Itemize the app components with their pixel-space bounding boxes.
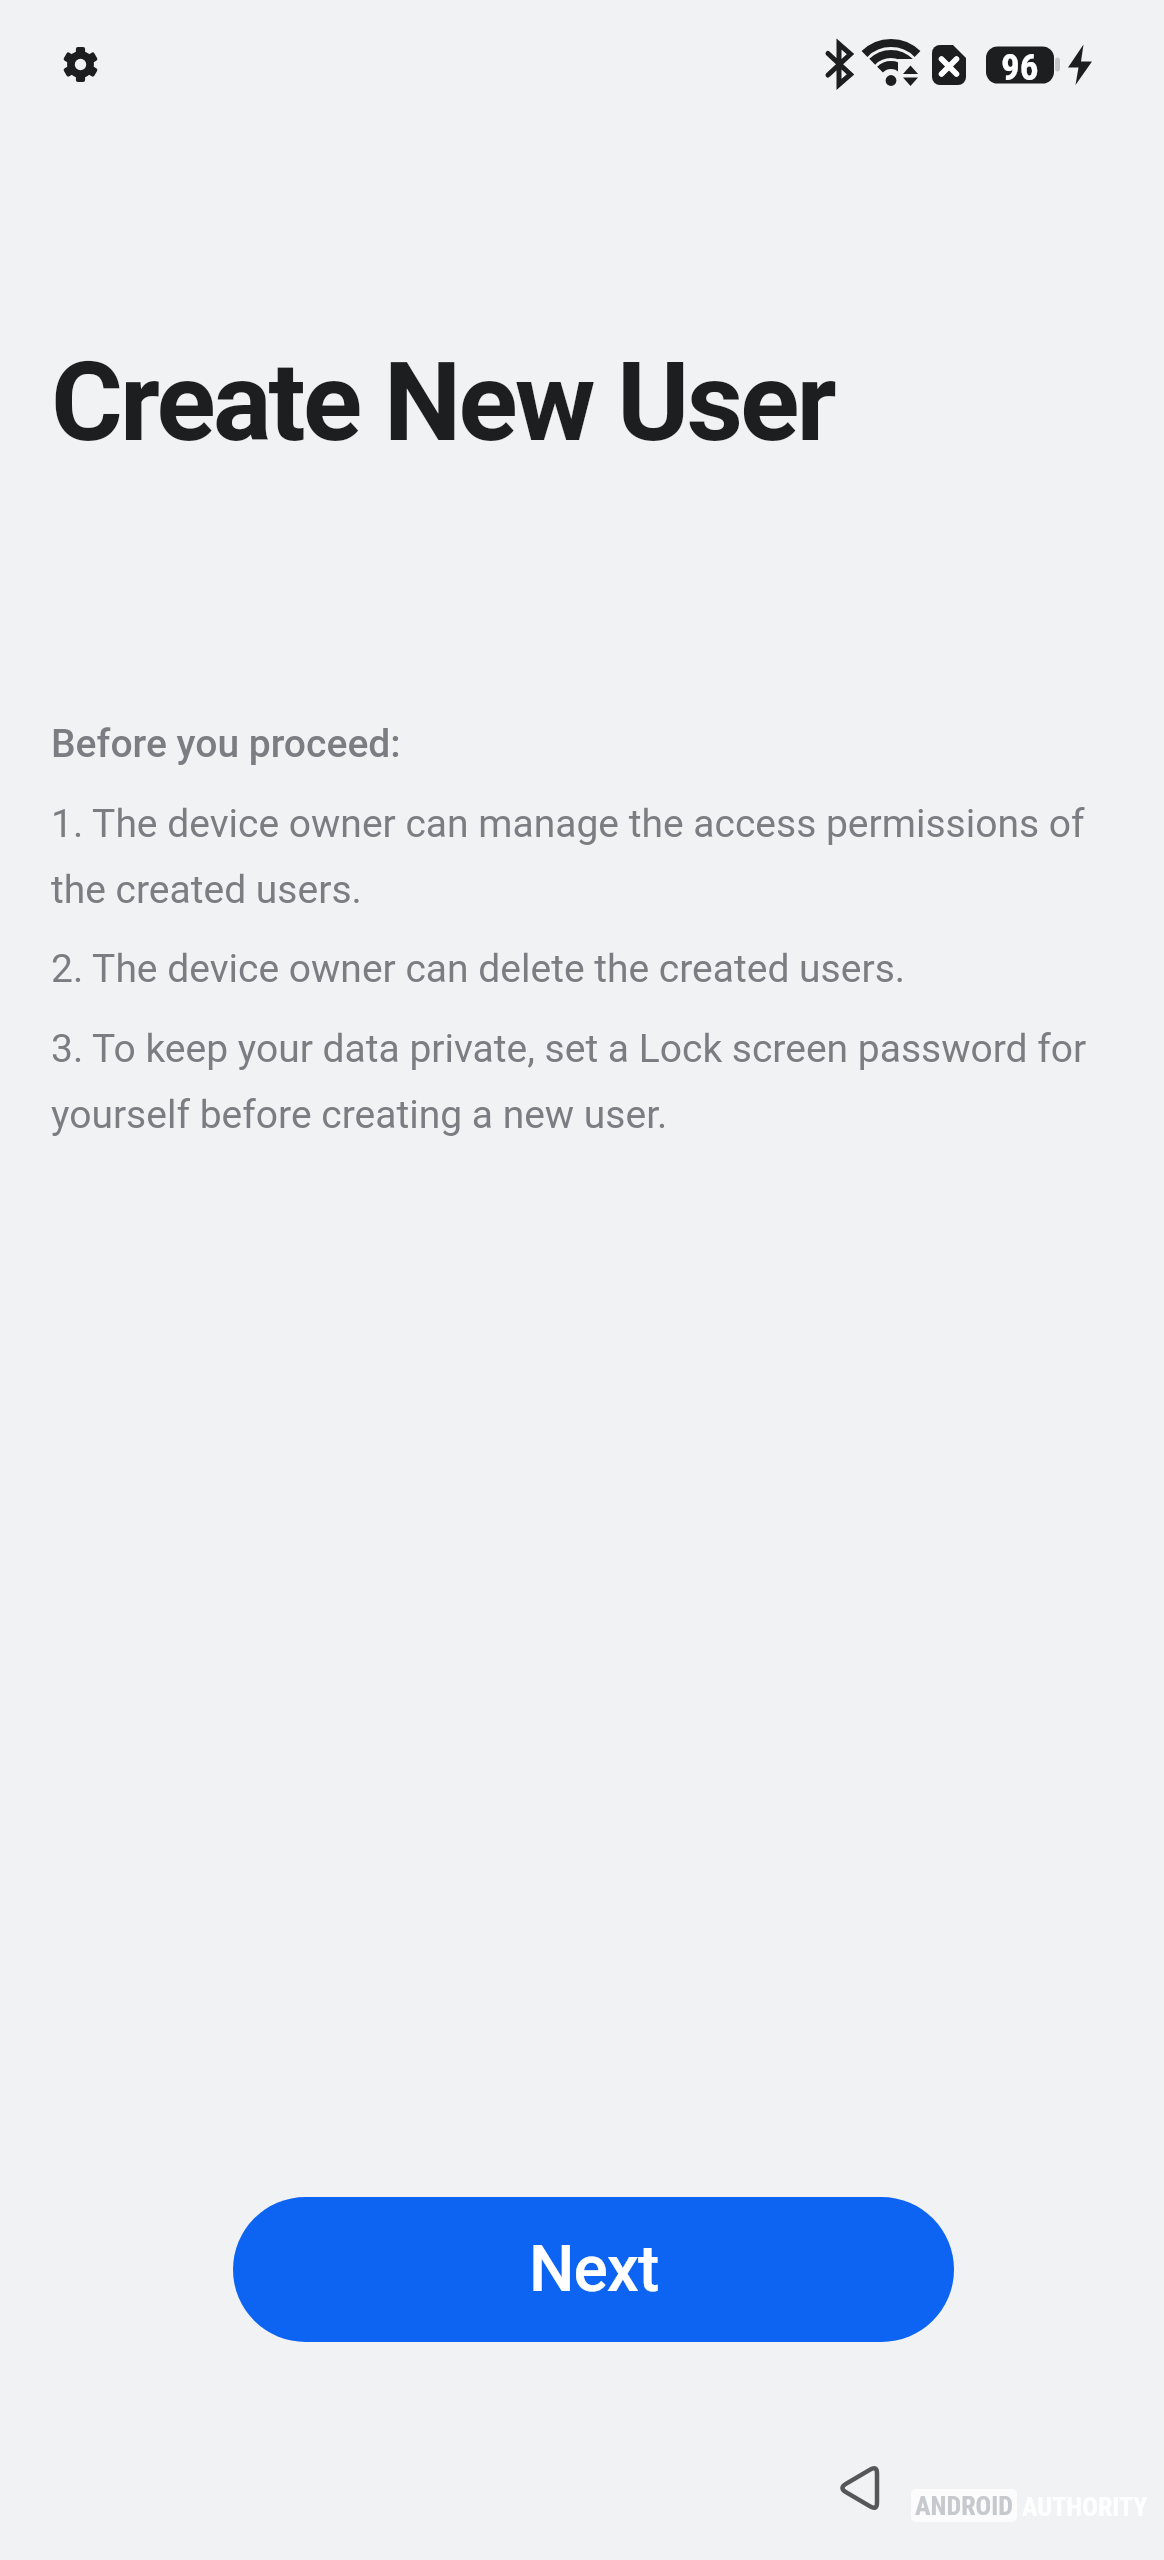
- staticText: AUTHORITY: [1022, 2492, 1148, 2522]
- staticText: ANDROID: [915, 2491, 1013, 2521]
- staticText: 3. To keep your data private, set a Lock…: [51, 1026, 1087, 1137]
- staticText: 96: [1001, 46, 1039, 83]
- staticText: 2. The device owner can delete the creat…: [51, 946, 906, 992]
- staticText: Next: [529, 2232, 659, 2307]
- button[interactable]: [824, 2452, 894, 2522]
- button[interactable]: Next: [233, 2197, 954, 2342]
- staticText: Before you proceed:: [51, 721, 401, 767]
- staticText: 1. The device owner can manage the acces…: [51, 801, 1085, 912]
- staticText: Create New User: [51, 338, 834, 467]
